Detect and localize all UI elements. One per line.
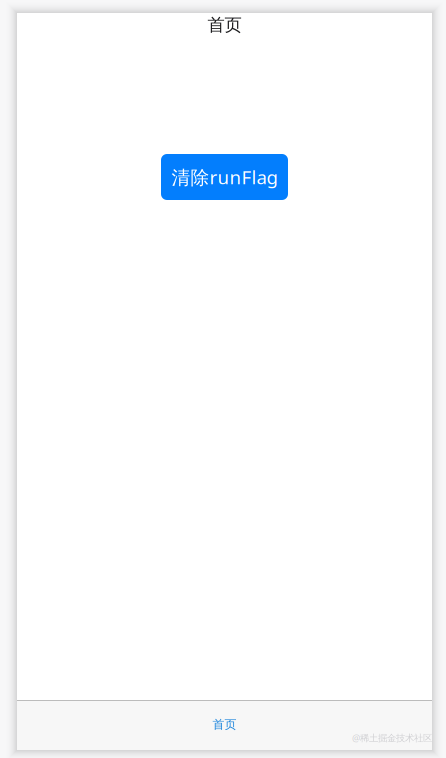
button[interactable]: 首页 xyxy=(17,700,432,751)
staticText: @稀土掘金技术社区 xyxy=(352,732,432,744)
staticText: 首页 xyxy=(212,717,236,732)
staticText: 首页 xyxy=(207,14,241,36)
button[interactable]: 清除runFlag xyxy=(161,154,288,200)
staticText: 清除runFlag xyxy=(171,165,277,189)
